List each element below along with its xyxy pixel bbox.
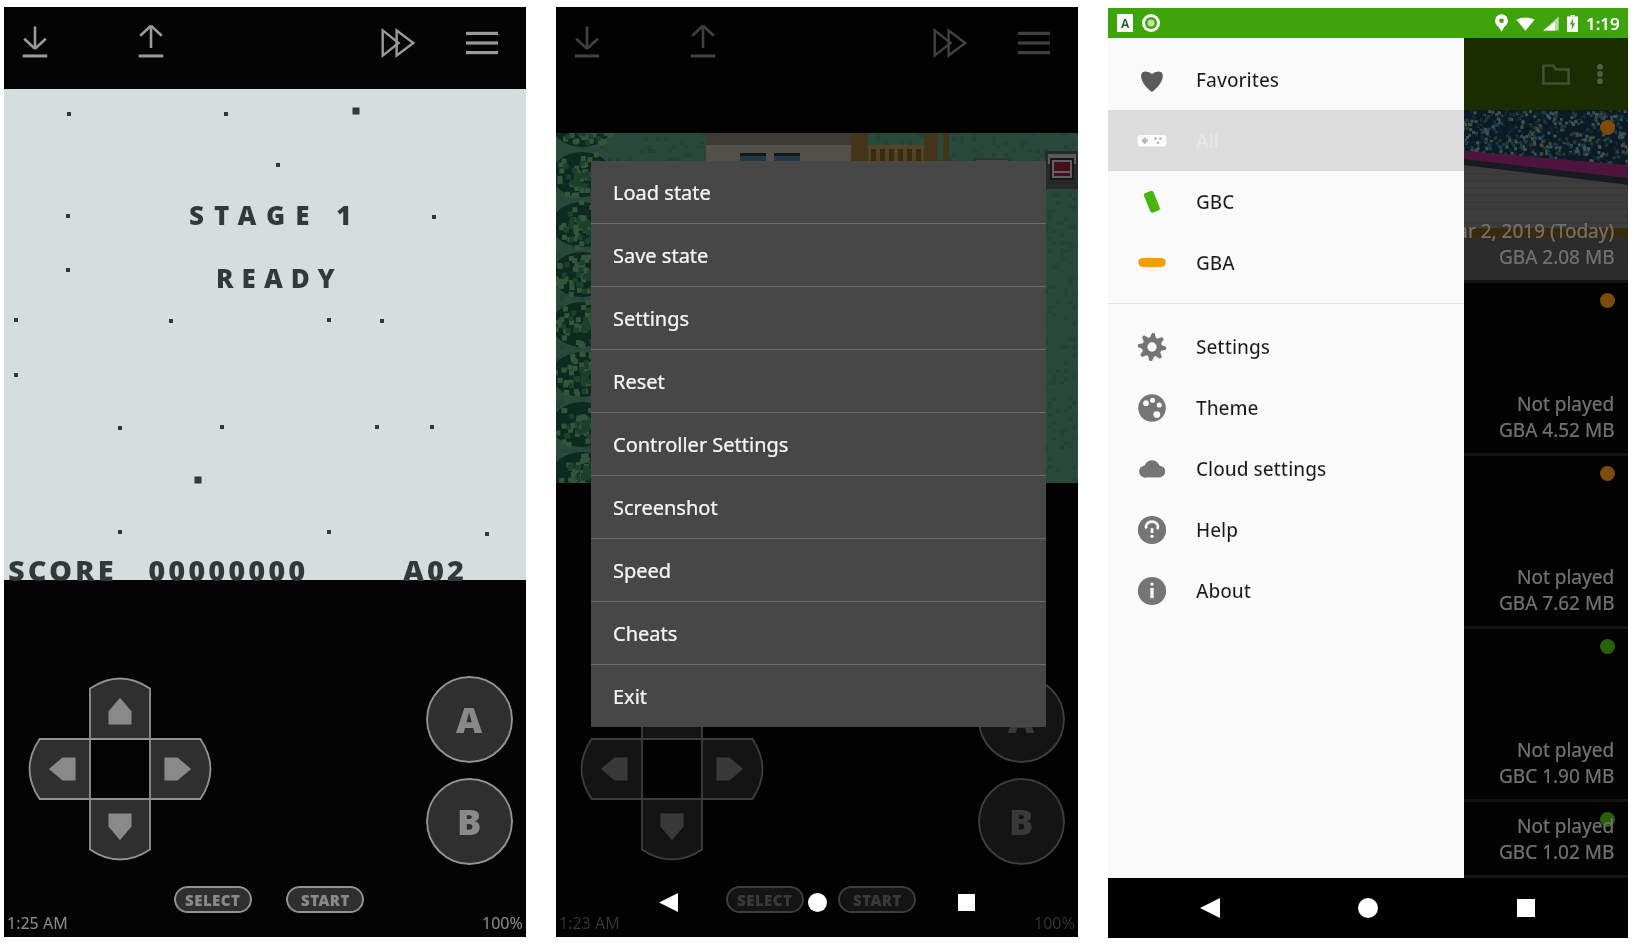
staticText: Load state [613,179,711,206]
staticText: A [456,695,483,744]
button[interactable]: A [426,676,513,763]
staticText: READY [216,260,343,295]
button[interactable]: Screenshot [591,476,1046,538]
button[interactable]: Load state [4,7,66,79]
staticText: 1:19 [1586,12,1620,35]
button[interactable]: START [838,886,916,913]
staticText: About [1196,578,1252,604]
staticText: Speed [613,557,672,584]
staticText: A02 [403,550,468,589]
button[interactable]: Right [702,739,762,799]
button[interactable]: Up [90,679,150,739]
staticText: Settings [1196,334,1270,360]
button[interactable]: Not played [1108,629,1628,802]
button[interactable]: Load state [556,7,618,79]
button[interactable]: SELECT [726,886,804,913]
button[interactable]: Right [150,739,210,799]
staticText: GBA 7.62 MB [1499,590,1615,616]
button[interactable]: Theme [1108,377,1464,438]
staticText: Not played [1517,737,1615,763]
staticText: START [301,890,350,910]
staticText: B [457,797,482,846]
staticText: Cloud settings [1196,456,1327,482]
button[interactable]: Reset [591,350,1046,412]
button[interactable]: Exit [591,665,1046,727]
button[interactable]: GBA [1108,232,1464,293]
staticText: A [1008,695,1035,744]
button[interactable]: Up [642,679,702,739]
button[interactable]: Not played [1108,802,1628,878]
staticText: Save state [613,242,709,269]
button[interactable]: Fast forward [358,7,438,79]
staticText: SCORE 00000000 [8,550,309,589]
staticText: 1:23 AM [559,912,620,934]
button[interactable]: Settings [1108,316,1464,377]
button[interactable]: Mar 2, 2019 (Today) [1108,110,1628,283]
button[interactable]: Home [1343,883,1393,933]
button[interactable]: Back [648,882,688,922]
staticText: GBA 2.08 MB [1499,244,1615,270]
staticText: 100% [1034,912,1075,934]
button[interactable]: Cheats [591,602,1046,664]
staticText: Theme [1196,395,1259,421]
button[interactable]: Controller Settings [591,413,1046,475]
button[interactable]: B [978,778,1065,865]
staticText: GBA [1196,250,1235,276]
button[interactable]: Save state [618,7,788,79]
staticText: Exit [613,683,648,710]
button[interactable]: Left [582,739,642,799]
staticText: Help [1196,517,1239,543]
staticText: GBC 1.90 MB [1499,763,1615,789]
staticText: Controller Settings [613,431,789,458]
staticText: Mar 2, 2019 (Today) [1440,218,1615,244]
button[interactable]: Down [642,799,702,859]
staticText: Screenshot [613,494,718,521]
staticText: 100% [482,912,523,934]
button[interactable]: Help [1108,499,1464,560]
button[interactable]: All [1108,110,1464,171]
staticText: SELECT [185,890,241,910]
staticText: GBC [1196,189,1235,215]
staticText: Favorites [1196,67,1280,93]
staticText: 1:25 AM [7,912,68,934]
staticText: Reset [613,368,665,395]
staticText: GBA 4.52 MB [1499,417,1615,443]
button[interactable]: Back [1185,883,1235,933]
button[interactable]: Recent apps [946,882,986,922]
staticText: Settings [613,305,690,332]
staticText: Not played [1517,391,1615,417]
staticText: SELECT [737,890,793,910]
button[interactable]: A [978,676,1065,763]
button[interactable]: Fast forward [910,7,990,79]
button[interactable]: More options [1580,54,1620,94]
button[interactable]: SELECT [174,886,252,913]
button[interactable]: GBC [1108,171,1464,232]
staticText: Not played [1517,813,1615,839]
button[interactable]: Favorites [1108,49,1464,110]
button[interactable]: Save state [591,224,1046,286]
button[interactable]: Not played [1108,456,1628,629]
button[interactable]: Save state [66,7,236,79]
staticText: All [1196,128,1219,154]
staticText: Cheats [613,620,678,647]
button[interactable]: Home [797,882,837,922]
button[interactable]: START [286,886,364,913]
button[interactable]: Browse folder [1532,50,1580,98]
button[interactable]: Menu [990,7,1078,79]
staticText: Not played [1517,564,1615,590]
staticText: B [1009,797,1034,846]
button[interactable]: Cloud settings [1108,438,1464,499]
button[interactable]: About [1108,560,1464,621]
button[interactable]: Settings [591,287,1046,349]
staticText: A [1121,15,1130,31]
button[interactable]: Down [90,799,150,859]
staticText: GBC 1.02 MB [1499,839,1615,865]
button[interactable]: Menu [438,7,526,79]
button[interactable]: Left [30,739,90,799]
staticText: STAGE 1 [189,197,362,232]
button[interactable]: B [426,778,513,865]
button[interactable]: Load state [591,161,1046,223]
button[interactable]: Not played [1108,283,1628,456]
button[interactable]: Speed [591,539,1046,601]
button[interactable]: Recent apps [1501,883,1551,933]
